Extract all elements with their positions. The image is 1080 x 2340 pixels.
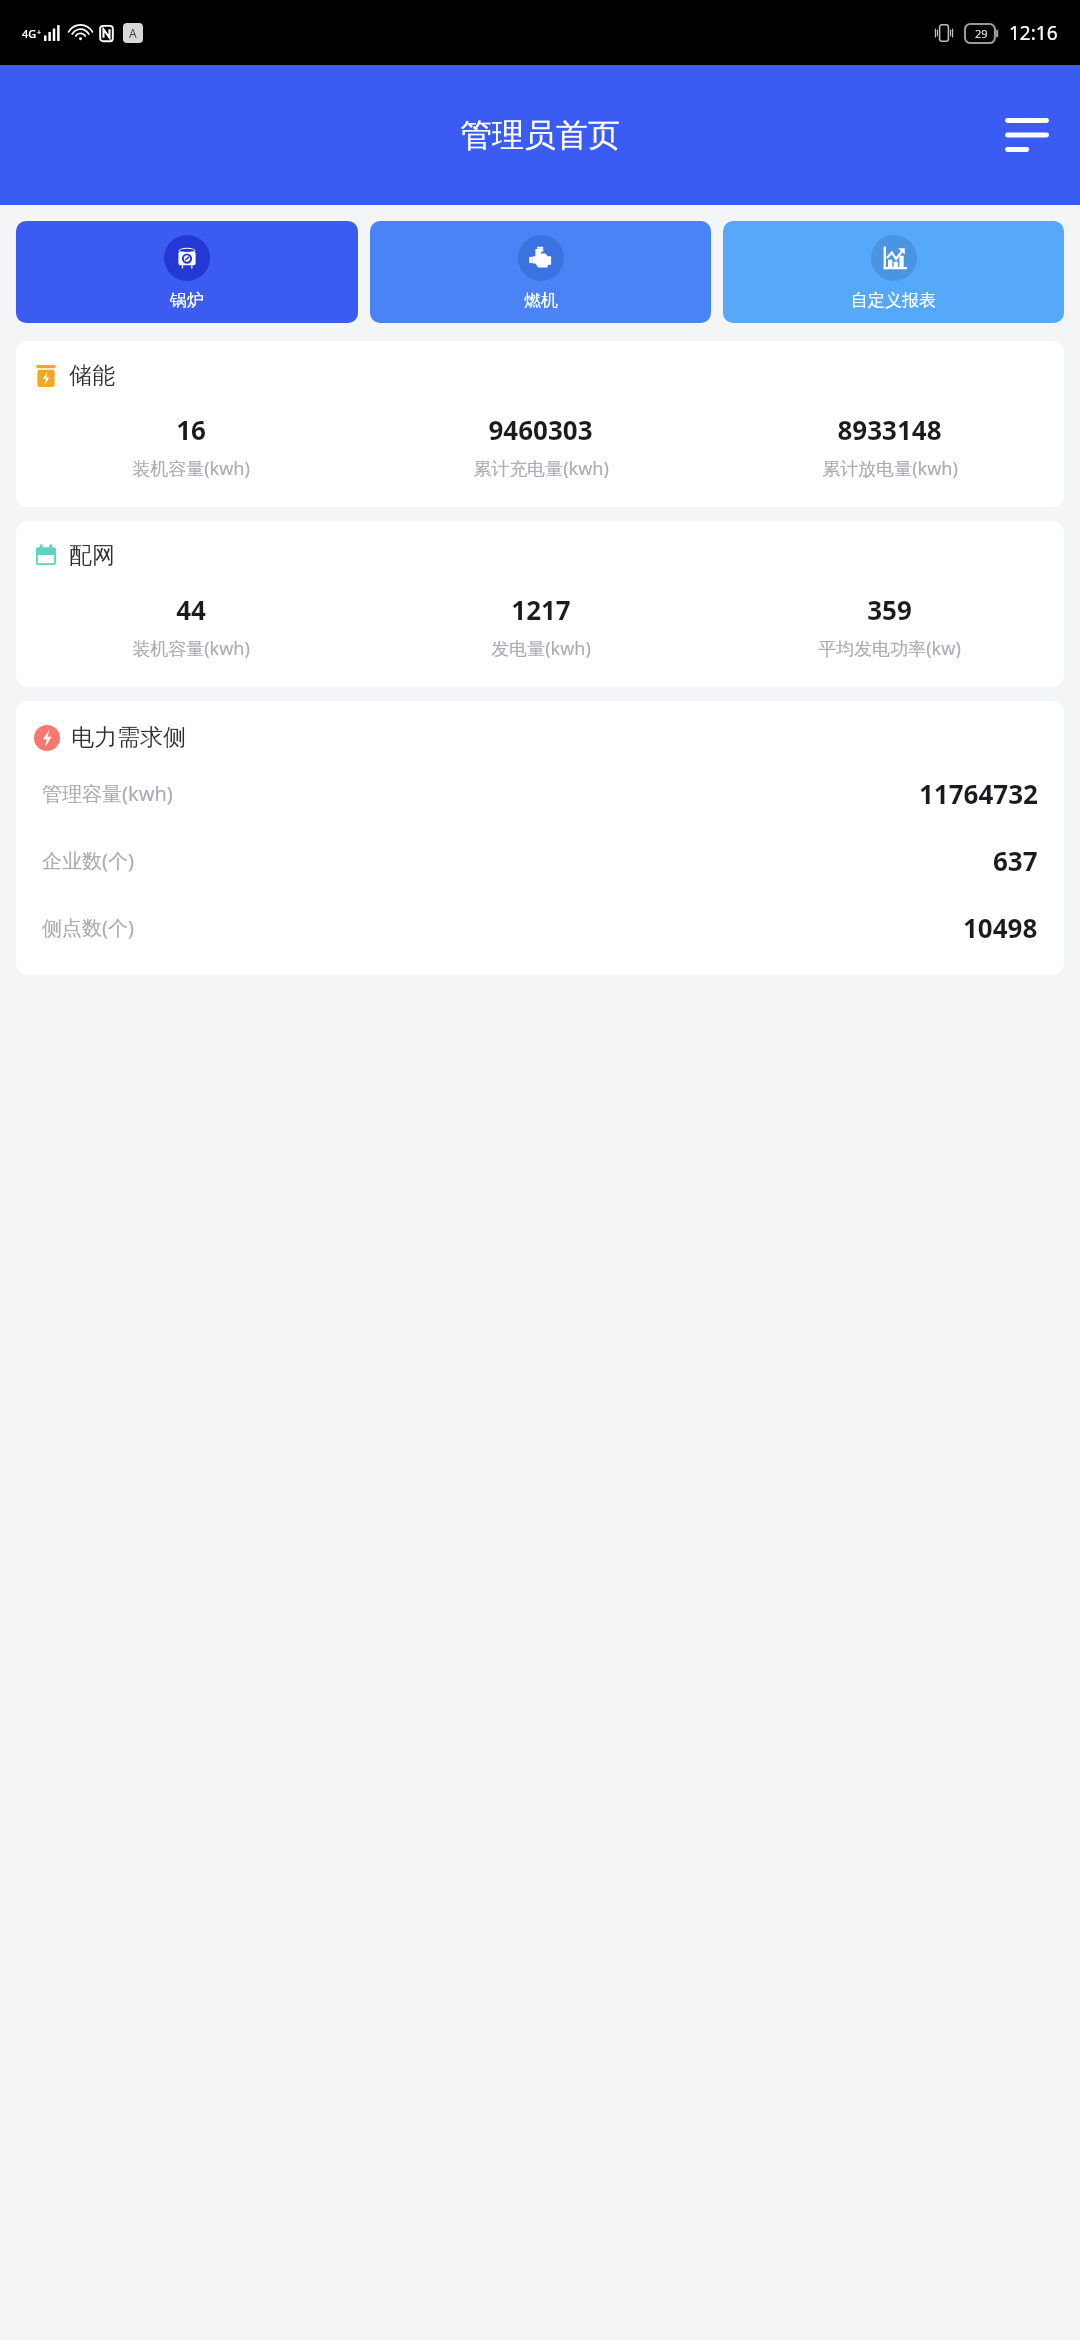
staticText: 储能: [69, 361, 115, 390]
staticText: 发电量(kwh): [491, 636, 591, 661]
staticText: 累计充电量(kwh): [473, 456, 609, 481]
staticText: 11764732: [919, 776, 1038, 811]
staticText: 电力需求侧: [71, 723, 186, 752]
staticText: 装机容量(kwh): [132, 456, 250, 481]
button[interactable]: 配网: [16, 521, 1064, 687]
staticText: A: [129, 25, 137, 41]
staticText: 8933148: [837, 412, 942, 447]
staticText: 燃机: [524, 290, 558, 311]
staticText: 侧点数(个): [42, 914, 134, 941]
staticText: 配网: [69, 541, 115, 570]
button[interactable]: 锅炉: [16, 221, 358, 323]
button[interactable]: 燃机: [370, 221, 711, 323]
staticText: 16: [176, 412, 206, 447]
staticText: 平均发电功率(kw): [818, 636, 961, 661]
staticText: 装机容量(kwh): [132, 636, 250, 661]
staticText: 管理员首页: [460, 115, 620, 155]
staticText: 管理容量(kwh): [42, 780, 173, 807]
staticText: 44: [176, 592, 206, 627]
staticText: 企业数(个): [42, 847, 134, 874]
staticText: +: [37, 28, 42, 38]
staticText: 637: [993, 843, 1038, 878]
staticText: 累计放电量(kwh): [822, 456, 958, 481]
staticText: 4G: [22, 26, 37, 41]
staticText: 359: [867, 592, 912, 627]
staticText: 9460303: [488, 412, 593, 447]
staticText: 29: [975, 26, 988, 41]
staticText: 10498: [963, 910, 1038, 945]
button[interactable]: 储能: [16, 341, 1064, 507]
button[interactable]: 自定义报表: [723, 221, 1064, 323]
button[interactable]: Menu: [996, 104, 1058, 166]
staticText: 锅炉: [170, 290, 204, 311]
staticText: 1217: [511, 592, 571, 627]
staticText: 自定义报表: [851, 290, 936, 311]
staticText: 12:16: [1009, 20, 1058, 46]
button[interactable]: 电力需求侧: [16, 701, 1064, 975]
